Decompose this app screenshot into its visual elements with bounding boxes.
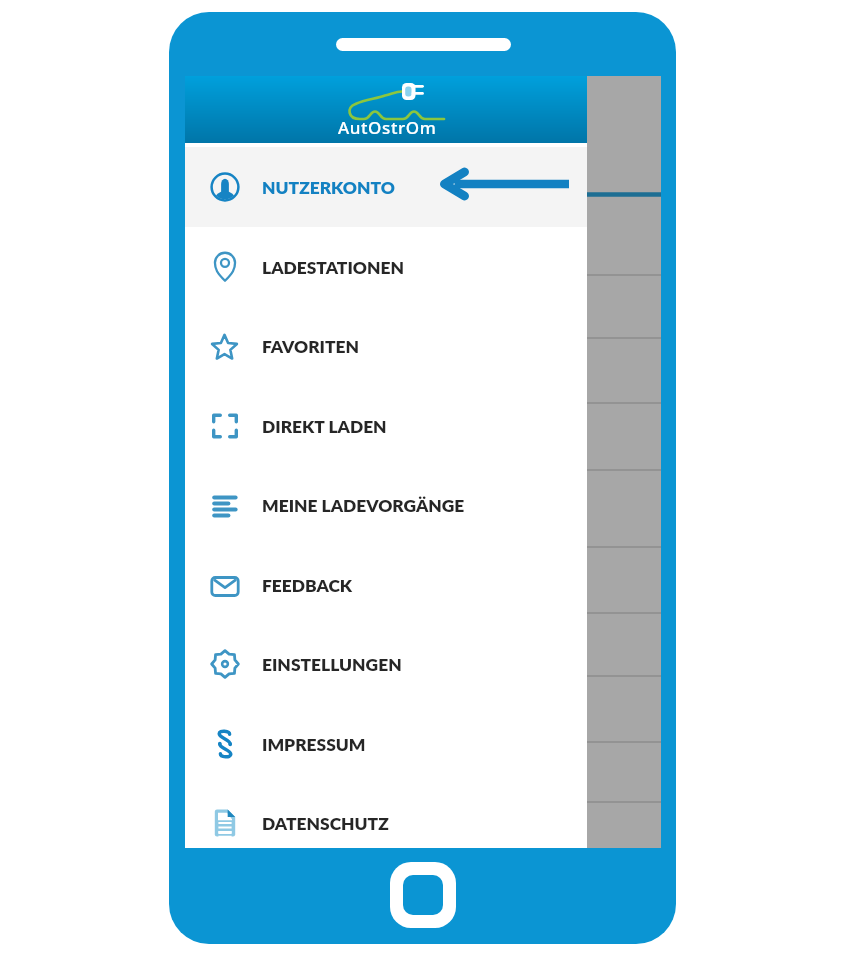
staticText: NUTZERKONTO [262,177,395,198]
button[interactable]: DATENSCHUTZ [185,783,587,848]
staticText: FAVORITEN [262,336,360,357]
staticText: FEEDBACK [262,575,353,596]
staticText: MEINE LADEVORGÄNGE [262,495,465,516]
button[interactable]: Home [390,862,456,928]
staticText: DIREKT LADEN [262,416,387,437]
staticText: IMPRESSUM [262,734,366,755]
staticText: LADESTATIONEN [262,257,404,278]
button[interactable]: IMPRESSUM [185,704,587,784]
staticText: EINSTELLUNGEN [262,654,402,675]
staticText: AutOstrOm [338,116,437,139]
button[interactable]: EINSTELLUNGEN [185,624,587,704]
staticText: DATENSCHUTZ [262,813,389,834]
button[interactable]: FEEDBACK [185,545,587,625]
button[interactable]: NUTZERKONTO [185,147,587,227]
button[interactable]: DIREKT LADEN [185,386,587,466]
button[interactable]: MEINE LADEVORGÄNGE [185,465,587,545]
button[interactable]: LADESTATIONEN [185,227,587,307]
button[interactable]: FAVORITEN [185,306,587,386]
